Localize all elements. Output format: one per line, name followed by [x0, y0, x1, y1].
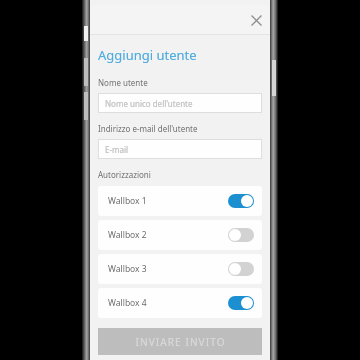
- staticText: Wallbox 1: [108, 195, 147, 207]
- button[interactable]: INVIARE INVITO: [98, 328, 262, 355]
- staticText: E-mail: [105, 144, 129, 155]
- button[interactable]: Wallbox 2: [98, 220, 262, 250]
- staticText: Wallbox 2: [108, 229, 147, 241]
- button[interactable]: Nome unico dell'utente: [98, 93, 262, 113]
- button[interactable]: Wallbox 3: [98, 254, 262, 284]
- button[interactable]: Wallbox 1 attivo: [228, 194, 254, 208]
- button[interactable]: Wallbox 4: [98, 288, 262, 318]
- button[interactable]: Wallbox 1: [98, 186, 262, 216]
- staticText: Nome unico dell'utente: [105, 98, 193, 109]
- staticText: Wallbox 4: [108, 297, 147, 309]
- button[interactable]: Chiudi: [245, 9, 267, 31]
- staticText: Indirizzo e-mail dell'utente: [98, 123, 198, 134]
- button[interactable]: Wallbox 2 disattivo: [228, 228, 254, 242]
- staticText: Wallbox 3: [108, 263, 147, 275]
- staticText: Autorizzazioni: [98, 169, 151, 180]
- button[interactable]: Wallbox 4 attivo: [228, 296, 254, 310]
- staticText: Nome utente: [98, 77, 148, 88]
- staticText: Aggiungi utente: [98, 46, 197, 64]
- button[interactable]: Wallbox 3 disattivo: [228, 262, 254, 276]
- button[interactable]: E-mail: [98, 139, 262, 159]
- staticText: INVIARE INVITO: [135, 335, 226, 349]
